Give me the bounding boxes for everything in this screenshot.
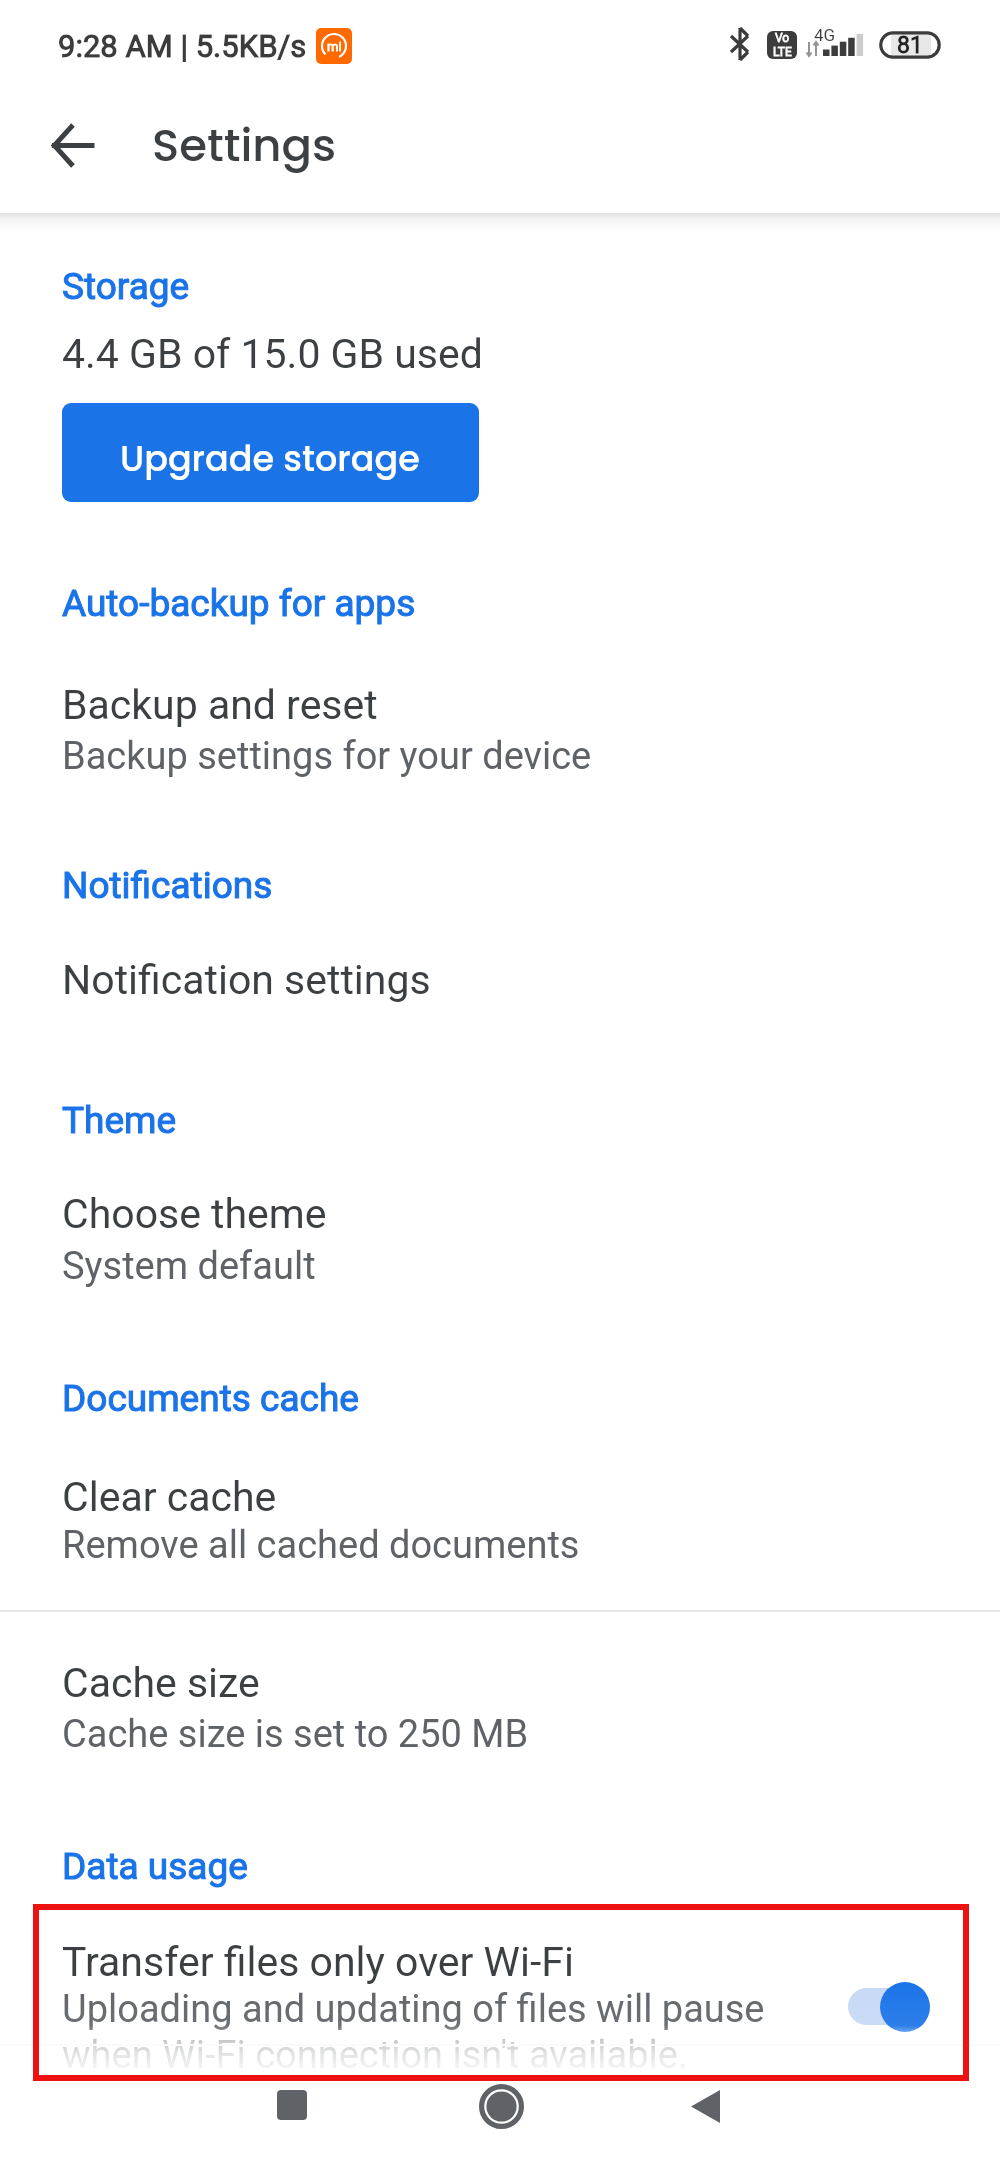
staticText: Theme [62,1099,177,1142]
button[interactable] [0,1462,1000,1572]
staticText: Storage [62,265,190,308]
button[interactable]: Back [650,2063,760,2149]
button[interactable] [0,1648,1000,1758]
staticText: Transfer files only over Wi-Fi [62,1938,574,1986]
staticText: System default [62,1244,316,1289]
staticText: Remove all cached documents [62,1523,580,1568]
staticText: 9:28 AM | 5.5KB/s [58,28,307,64]
staticText: Upgrade storage [120,434,420,483]
staticText: 4.4 GB of 15.0 GB used [62,330,483,378]
staticText: 4G [814,25,836,45]
staticText: Auto-backup for apps [62,582,416,625]
staticText: Notifications [62,864,273,907]
staticText: Data usage [62,1845,248,1888]
button[interactable]: Recent apps [237,2062,347,2148]
button[interactable] [0,1180,1000,1290]
staticText: Clear cache [62,1473,277,1521]
staticText: Cache size [62,1659,260,1707]
staticText: Storage [62,265,190,308]
staticText: Cache size is set to 250 MB [62,1712,529,1757]
staticText: Notification settings [62,956,431,1004]
button[interactable]: Navigate up [30,103,114,187]
staticText: Vo [775,31,790,45]
staticText: Uploading and updating of files will pau… [62,1987,782,2077]
staticText: LTE [773,45,792,59]
staticText: Notifications [62,864,273,907]
button[interactable] [0,670,1000,780]
staticText: Choose theme [62,1190,327,1238]
staticText: Documents cache [62,1377,359,1420]
staticText: Auto-backup for apps [62,582,416,625]
staticText: Theme [62,1099,177,1142]
button[interactable] [0,1927,1000,2077]
button[interactable] [0,945,1000,1020]
staticText: 81 [897,32,923,59]
staticText: Backup and reset [62,681,378,729]
button[interactable]: Home [446,2063,556,2149]
staticText: Documents cache [62,1377,359,1420]
button[interactable]: Upgrade storage [62,403,479,502]
staticText: Settings [152,114,337,177]
staticText: Data usage [62,1845,248,1888]
staticText: mi [327,39,342,54]
staticText: Backup settings for your device [62,734,592,779]
